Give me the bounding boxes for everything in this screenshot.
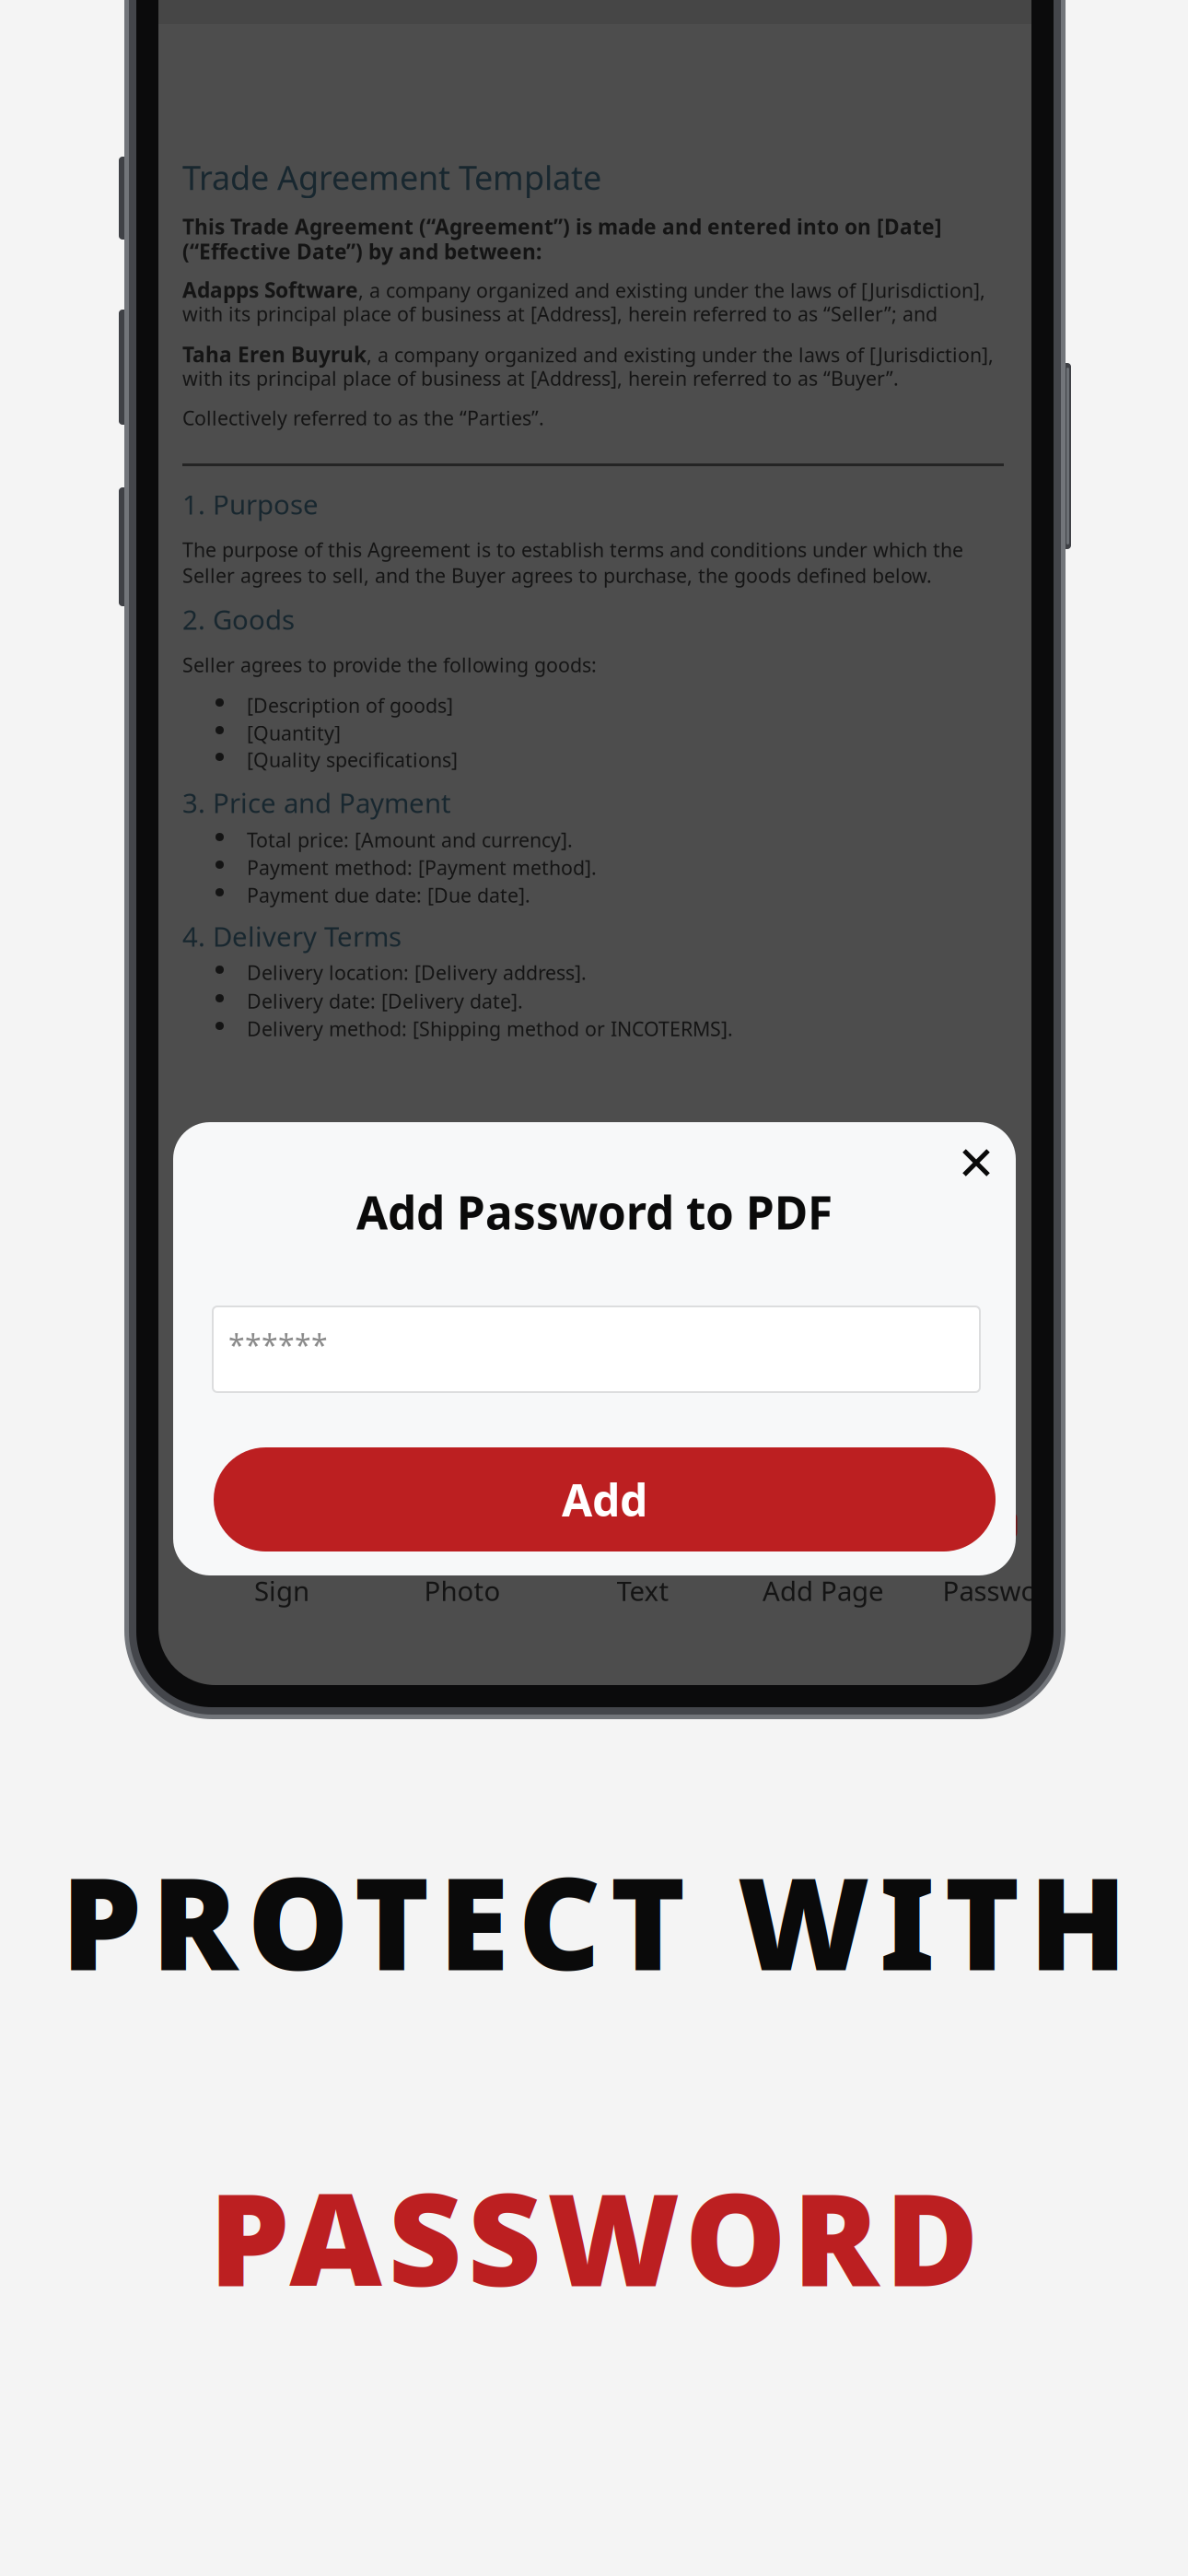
staticText: Sign bbox=[254, 1573, 309, 1609]
staticText: Delivery date: [Delivery date]. bbox=[247, 988, 523, 1014]
button[interactable]: ✻ bbox=[733, 1502, 914, 1612]
staticText: 1. Purpose bbox=[182, 486, 319, 522]
staticText: with its principal place of business at … bbox=[182, 301, 938, 327]
staticText: with its principal place of business at … bbox=[182, 365, 899, 391]
staticText: Add Password to PDF bbox=[356, 1182, 833, 1242]
staticText: 3. Price and Payment bbox=[182, 785, 451, 821]
button[interactable]: ✻ bbox=[372, 1502, 553, 1612]
staticText: Payment method: [Payment method]. bbox=[247, 854, 597, 881]
staticText: [Quantity] bbox=[247, 720, 341, 746]
staticText: Add bbox=[562, 1470, 647, 1529]
staticText: Taha Eren Buyruk, a company organized an… bbox=[182, 340, 994, 368]
staticText: PASSWORD bbox=[209, 2152, 979, 2321]
staticText: Delivery method: [Shipping method or INC… bbox=[247, 1016, 733, 1042]
staticText: Photo bbox=[424, 1573, 501, 1609]
staticText: Password bbox=[943, 1573, 1065, 1609]
staticText: Adapps Software, a company organized and… bbox=[182, 276, 985, 304]
staticText: Collectively referred to as the “Parties… bbox=[182, 405, 544, 431]
staticText: 2. Goods bbox=[182, 601, 295, 637]
button[interactable]: ✻ bbox=[192, 1502, 372, 1612]
button[interactable]: ✻ bbox=[914, 1502, 1094, 1612]
staticText: ****** bbox=[228, 1325, 328, 1364]
staticText: Delivery location: [Delivery address]. bbox=[247, 959, 587, 986]
staticText: Seller agrees to sell, and the Buyer agr… bbox=[182, 562, 932, 588]
staticText: (“Effective Date”) by and between: bbox=[182, 237, 542, 265]
staticText: Total price: [Amount and currency]. bbox=[247, 827, 573, 853]
staticText: Seller agrees to provide the following g… bbox=[182, 652, 597, 678]
staticText: Text bbox=[617, 1573, 669, 1609]
staticText: PROTECT WITH bbox=[61, 1836, 1127, 2005]
staticText: This Trade Agreement (“Agreement”) is ma… bbox=[182, 213, 942, 240]
staticText: Payment due date: [Due date]. bbox=[247, 882, 530, 908]
staticText: The purpose of this Agreement is to esta… bbox=[182, 537, 963, 563]
staticText: Trade Agreement Template bbox=[182, 155, 601, 199]
staticText: 4. Delivery Terms bbox=[182, 918, 402, 954]
button[interactable]: Add bbox=[214, 1447, 996, 1551]
staticText: [Description of goods] bbox=[247, 692, 453, 718]
button[interactable]: ✻ bbox=[553, 1502, 733, 1612]
staticText: Add Page bbox=[763, 1573, 884, 1609]
button[interactable]: Close bbox=[938, 1126, 1015, 1200]
staticText: [Quality specifications] bbox=[247, 747, 458, 773]
